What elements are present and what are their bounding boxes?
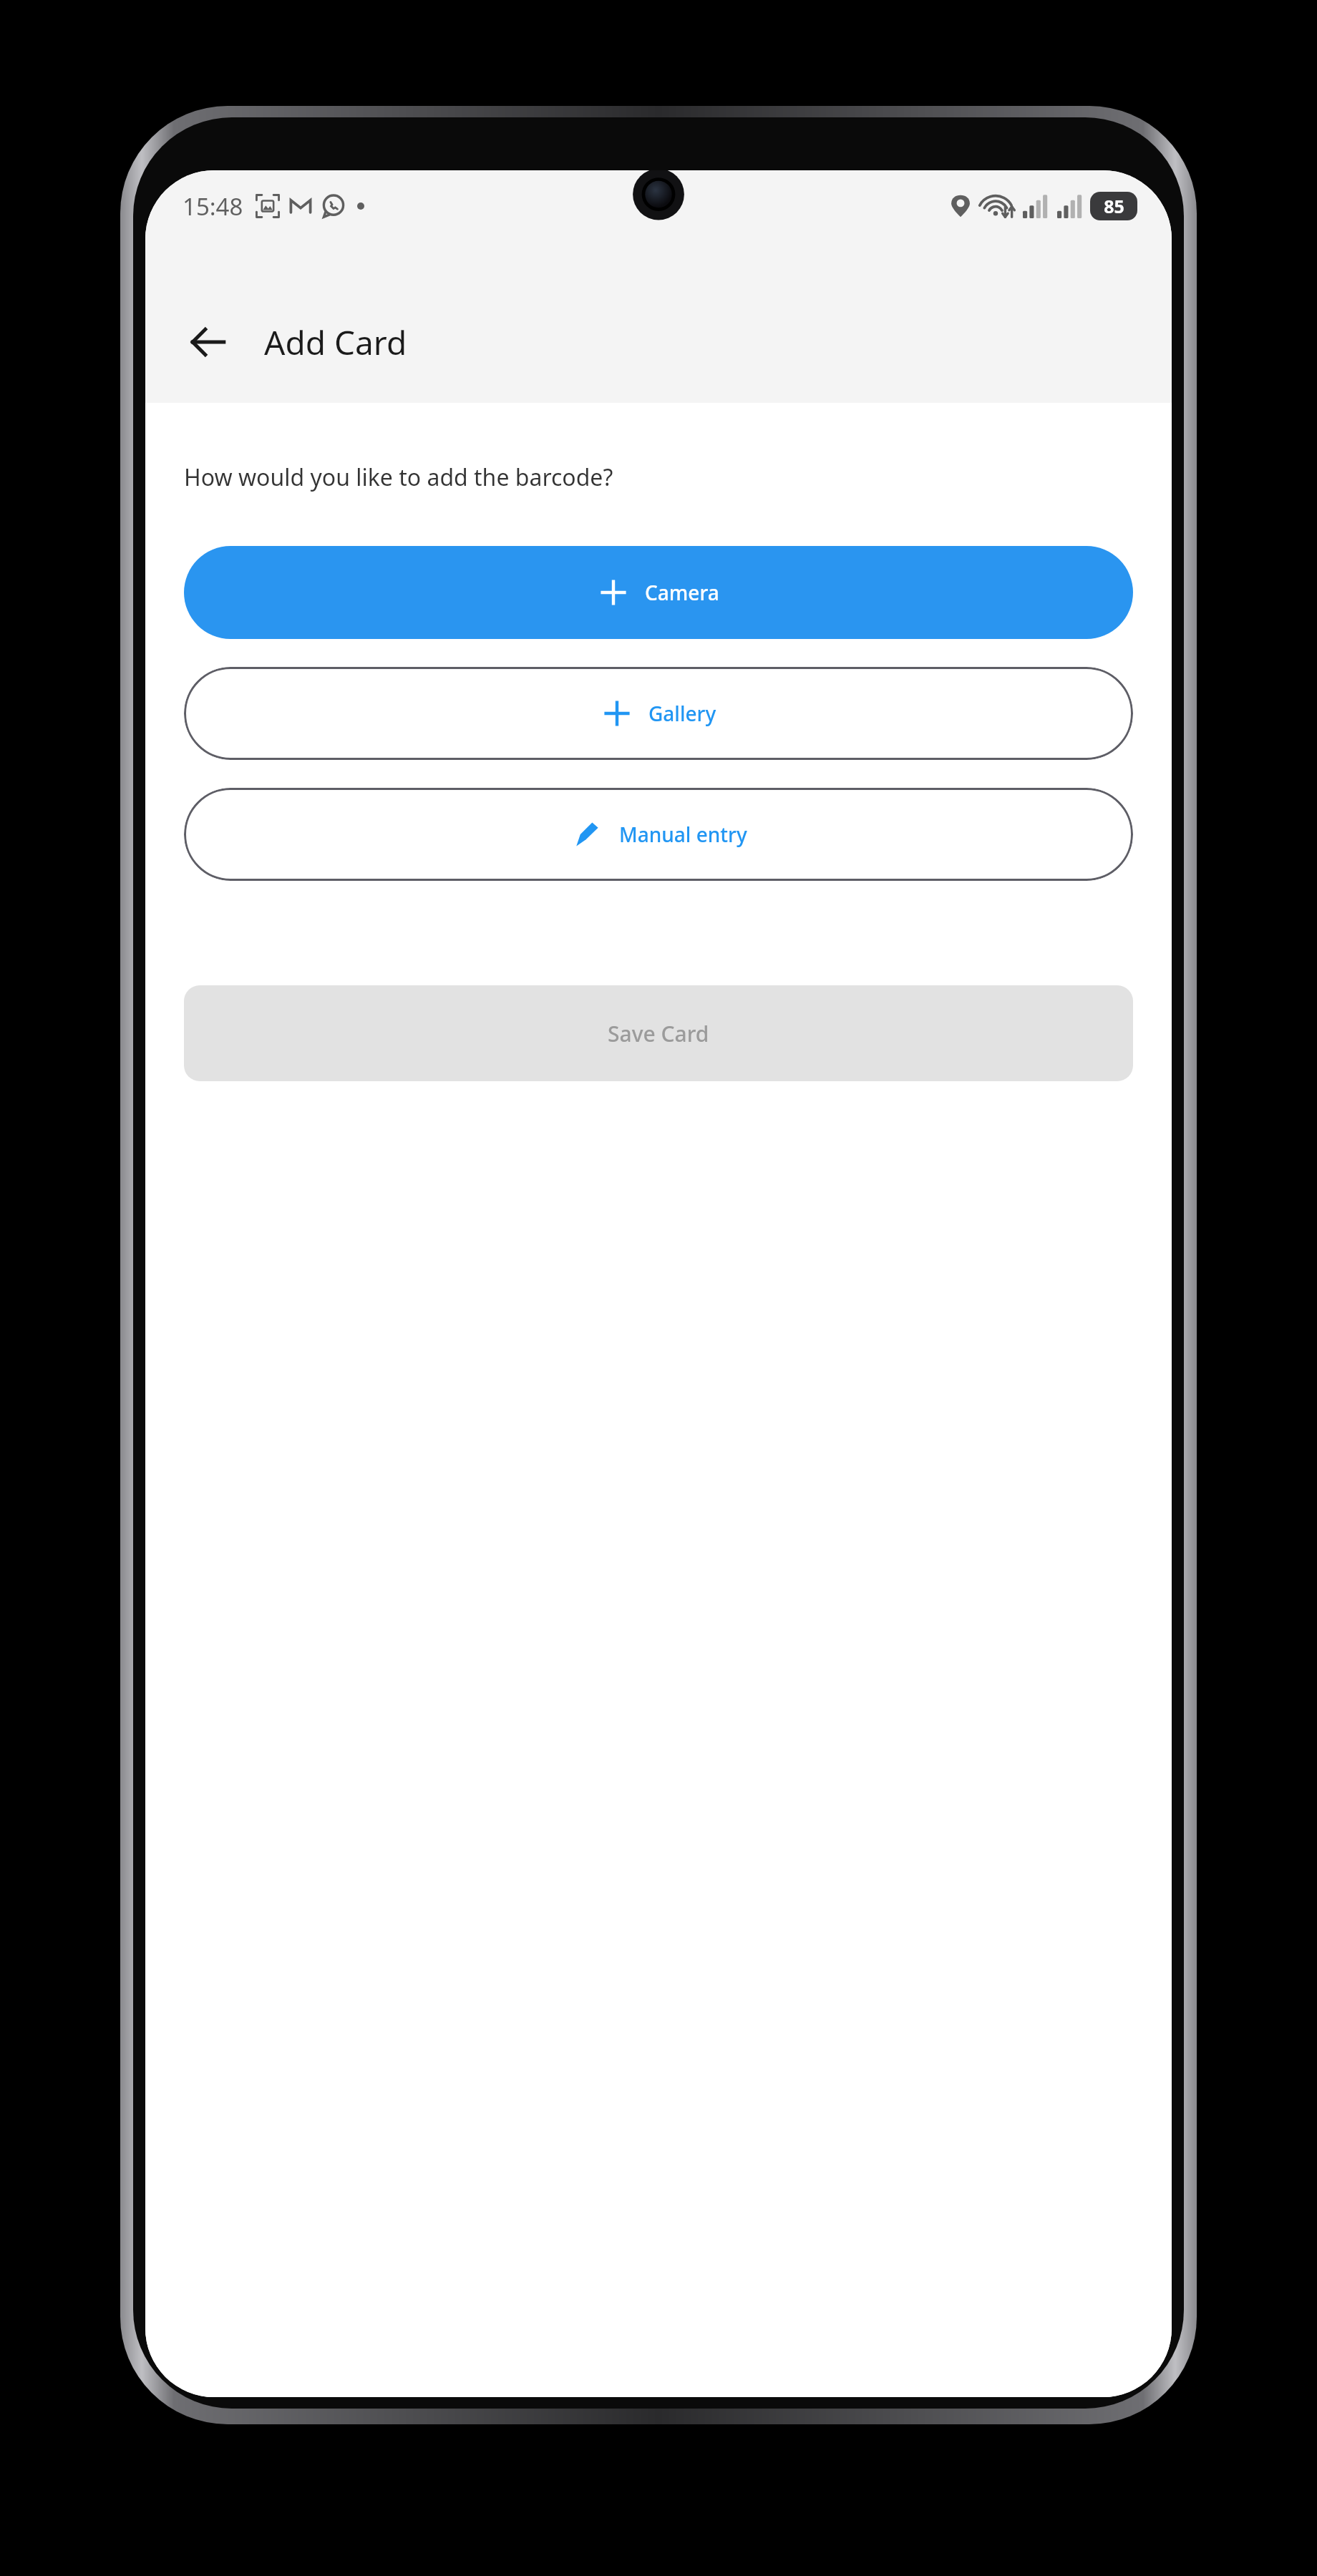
staticText: 15:48 xyxy=(183,190,243,223)
staticText: Add Card xyxy=(264,320,407,365)
staticText: Gallery xyxy=(648,700,716,727)
staticText: Save Card xyxy=(608,1019,709,1048)
staticText: Camera xyxy=(645,579,719,606)
staticText: 85 xyxy=(1104,194,1124,218)
button[interactable]: Manual entry xyxy=(184,788,1133,881)
button[interactable]: Save Card xyxy=(184,985,1133,1081)
button[interactable]: Back xyxy=(174,308,243,376)
staticText: Manual entry xyxy=(619,821,747,848)
button[interactable]: Camera xyxy=(184,546,1133,639)
staticText: How would you like to add the barcode? xyxy=(184,462,613,493)
button[interactable]: Gallery xyxy=(184,667,1133,760)
